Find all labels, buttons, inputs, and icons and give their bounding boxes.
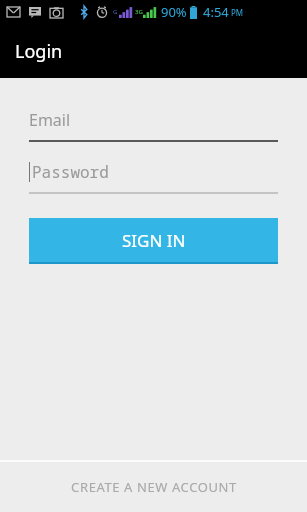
staticText: SIGN IN	[122, 229, 186, 252]
staticText: 3G	[135, 8, 143, 16]
button[interactable]: CREATE A NEW ACCOUNT	[0, 462, 307, 512]
button[interactable]: Password	[29, 161, 278, 194]
staticText: PM	[231, 7, 244, 18]
staticText: CREATE A NEW ACCOUNT	[71, 478, 237, 496]
staticText: 4:54	[203, 3, 229, 21]
staticText: G	[113, 8, 118, 16]
staticText: 90%	[161, 3, 187, 21]
staticText: Email	[29, 109, 71, 131]
staticText: Password	[32, 161, 109, 183]
button[interactable]: Email	[29, 109, 278, 142]
button[interactable]: SIGN IN	[29, 218, 278, 264]
staticText: Login	[15, 39, 63, 64]
